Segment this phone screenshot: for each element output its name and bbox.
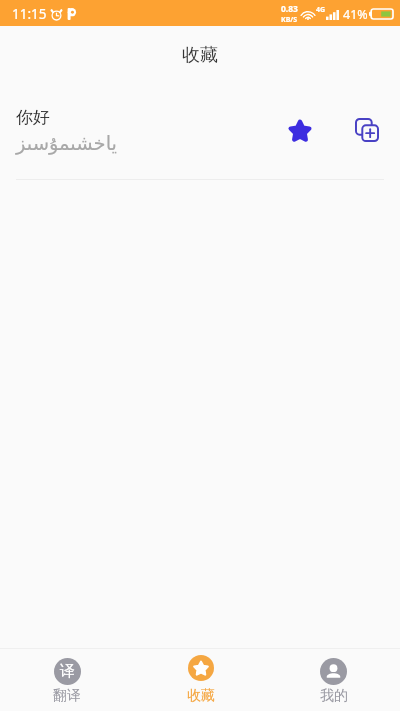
staticText: 翻译 [53,687,81,705]
staticText: 4G [316,5,326,15]
button[interactable]: Translate [0,658,134,705]
staticText: 41% [343,6,368,23]
button[interactable]: Profile [267,658,400,705]
staticText: ياخشىمۇسىز [16,132,118,155]
staticText: 你好 [16,107,50,128]
staticText: 我的 [320,687,348,705]
button[interactable]: Favorites [134,657,267,705]
button[interactable]: Favorite [278,108,322,152]
staticText: 11:15 [12,5,47,23]
button[interactable]: Copy [345,108,389,152]
staticText: 收藏 [187,687,215,705]
staticText: 0.83 [281,3,298,15]
button[interactable]: 你好 [0,80,400,179]
staticText: KB/S [281,15,298,25]
staticText: 收藏 [182,44,218,67]
staticText: 译 [60,662,75,681]
